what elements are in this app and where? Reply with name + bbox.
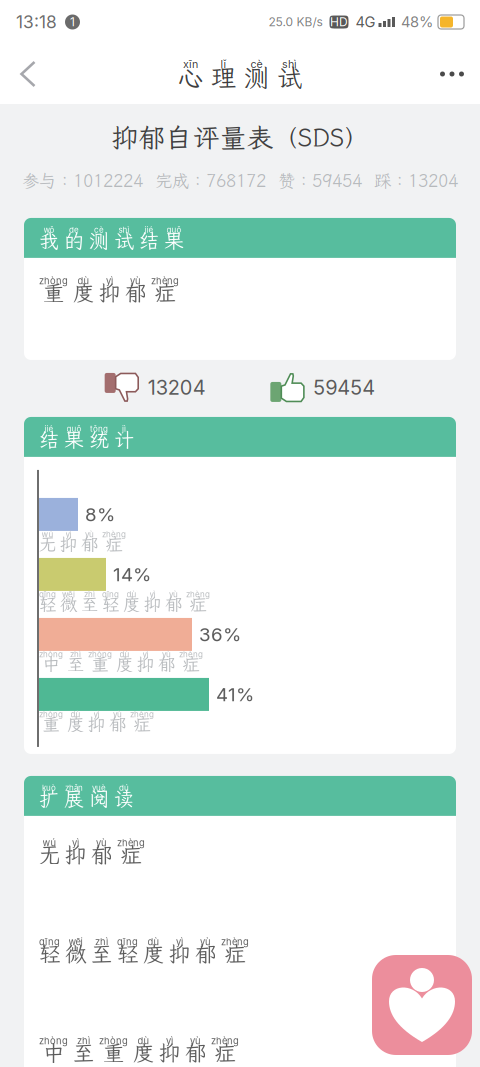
staticText: 测 [89,229,109,252]
staticText: yì [142,651,148,658]
staticText: 抑 [144,594,161,614]
staticText: 症 [154,280,175,305]
staticText: zhì [77,1036,90,1045]
staticText: yì [106,276,113,285]
staticText: yì [65,531,71,538]
button[interactable]: 59454 [270,372,375,403]
staticText: zhèng [179,651,203,658]
staticText: cè [250,59,262,69]
staticText: zhèng [186,591,210,598]
staticText: （SDS） [273,122,368,153]
staticText: 症 [105,534,122,554]
staticText: 症 [189,594,206,614]
staticText: guǒ [66,425,81,433]
staticText: kuò [42,784,56,792]
button[interactable]: Back [0,44,56,104]
staticText: qīng [102,591,119,598]
button[interactable]: qīng [24,915,456,1014]
staticText: guǒ [166,226,181,234]
staticText: zhèng [130,711,154,718]
staticText: 13204 [148,375,206,399]
staticText: 症 [214,1040,235,1065]
staticText: 25.0 KB/s [268,15,322,29]
staticText: 统 [89,428,109,451]
staticText: dù [137,1036,149,1045]
button[interactable]: Favorite [372,955,472,1055]
staticText: 抑 [169,941,190,966]
staticText: 症 [182,654,199,674]
staticText: 轻 [117,941,138,966]
staticText: 中 [43,1040,64,1065]
staticText: dù [70,711,80,718]
staticText: yù [169,591,178,598]
staticText: 59454 [313,375,375,399]
button[interactable]: zhòng [24,1014,456,1067]
staticText: wēi [62,591,75,598]
staticText: 轻 [39,941,60,966]
staticText: zhì [95,937,108,946]
staticText: 郁 [185,1040,206,1065]
staticText: yì [166,1036,173,1045]
staticText: jié [144,226,153,234]
staticText: qīng [117,937,138,946]
staticText: yì [93,711,99,718]
staticText: 郁 [195,941,216,966]
staticText: 郁 [109,714,126,734]
staticText: 36% [199,623,241,646]
staticText: 48% [401,13,433,31]
staticText: HD [330,15,348,29]
staticText: 重 [42,714,59,734]
staticText: 度 [67,714,84,734]
staticText: 郁 [91,842,112,867]
button[interactable]: wú [24,816,456,915]
staticText: yì [72,838,79,847]
button[interactable]: More [424,44,480,104]
staticText: 阅 [89,787,109,810]
staticText: 症 [120,842,141,867]
staticText: yì [149,591,155,598]
staticText: 结 [139,229,159,252]
staticText: shì [118,226,129,234]
staticText: 果 [164,229,184,252]
staticText: 试 [277,63,302,92]
staticText: 测 [244,63,269,92]
staticText: 中 [42,654,59,674]
staticText: lǐ [220,59,226,69]
staticText: wú [41,531,53,538]
staticText: 41% [216,683,254,706]
staticText: 抑郁自评量表 [111,120,273,155]
staticText: 1 [70,15,75,29]
staticText: 8% [85,503,115,526]
staticText: tǒng [90,425,108,433]
staticText: 理 [211,63,236,92]
staticText: 重 [103,1040,124,1065]
button[interactable]: 13204 [105,372,206,403]
staticText: wǒ [43,226,54,234]
staticText: zhèng [117,838,145,847]
staticText: 郁 [158,654,175,674]
staticText: dù [147,937,159,946]
staticText: jié [44,425,53,433]
staticText: 读 [114,787,134,810]
staticText: dù [77,276,89,285]
staticText: zhèng [151,276,179,285]
staticText: zhòng [99,1036,128,1045]
staticText: 重 [43,280,64,305]
staticText: zhèng [211,1036,239,1045]
staticText: 微 [60,594,77,614]
staticText: zhǎn [65,784,83,792]
staticText: 至 [67,654,84,674]
staticText: qīng [39,937,60,946]
staticText: 结 [39,428,59,451]
staticText: 试 [114,229,134,252]
staticText: 度 [73,280,94,305]
staticText: 展 [64,787,84,810]
staticText: yuè [92,784,106,792]
staticText: 14% [113,563,151,586]
staticText: 我 [39,229,59,252]
staticText: 心 [178,63,203,92]
staticText: 郁 [125,280,146,305]
staticText: yù [162,651,171,658]
staticText: qīng [39,591,56,598]
staticText: 郁 [81,534,98,554]
